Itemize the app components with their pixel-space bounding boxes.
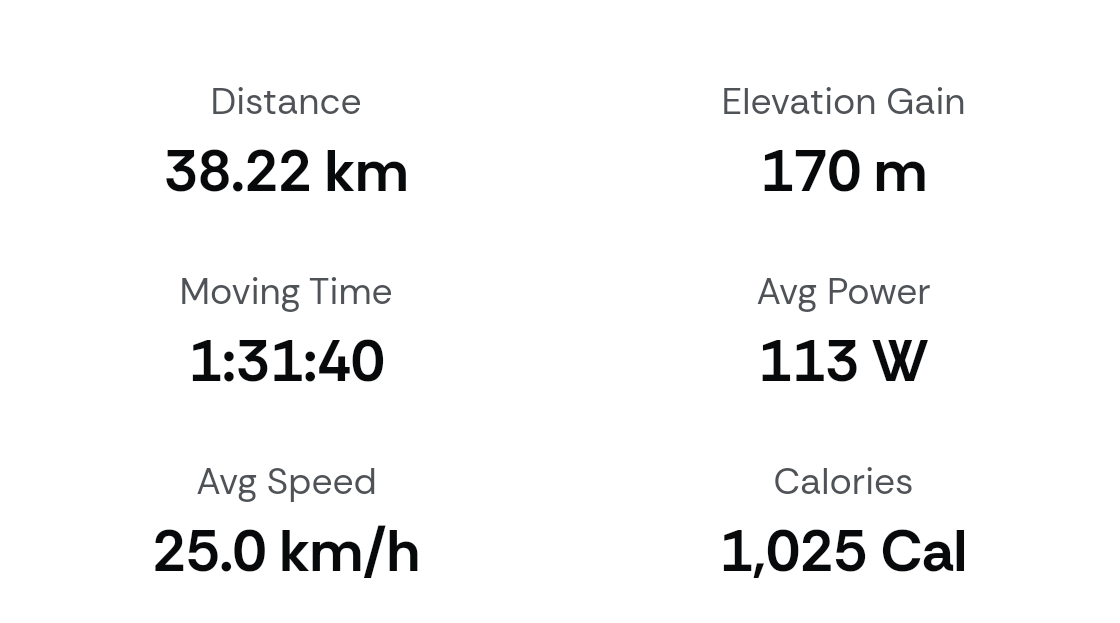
button[interactable]: Avg Speed	[0, 457, 572, 581]
button[interactable]: Calories	[572, 457, 1114, 581]
button[interactable]: Distance	[0, 77, 572, 201]
staticText: 170 m	[760, 133, 927, 209]
staticText: Avg Speed	[196, 457, 377, 505]
staticText: 25.0 km/h	[152, 513, 420, 589]
button[interactable]: Avg Power	[572, 267, 1114, 391]
staticText: Elevation Gain	[721, 77, 966, 125]
staticText: Distance	[210, 77, 362, 125]
button[interactable]: Moving Time	[0, 267, 572, 391]
staticText: 113 W	[758, 323, 929, 399]
staticText: 1:31:40	[188, 323, 385, 399]
staticText: 1,025 Cal	[719, 513, 967, 589]
staticText: Avg Power	[756, 267, 931, 315]
staticText: 38.22 km	[164, 133, 408, 209]
button[interactable]: Elevation Gain	[572, 77, 1114, 201]
staticText: Moving Time	[179, 267, 393, 315]
staticText: Calories	[773, 457, 914, 505]
